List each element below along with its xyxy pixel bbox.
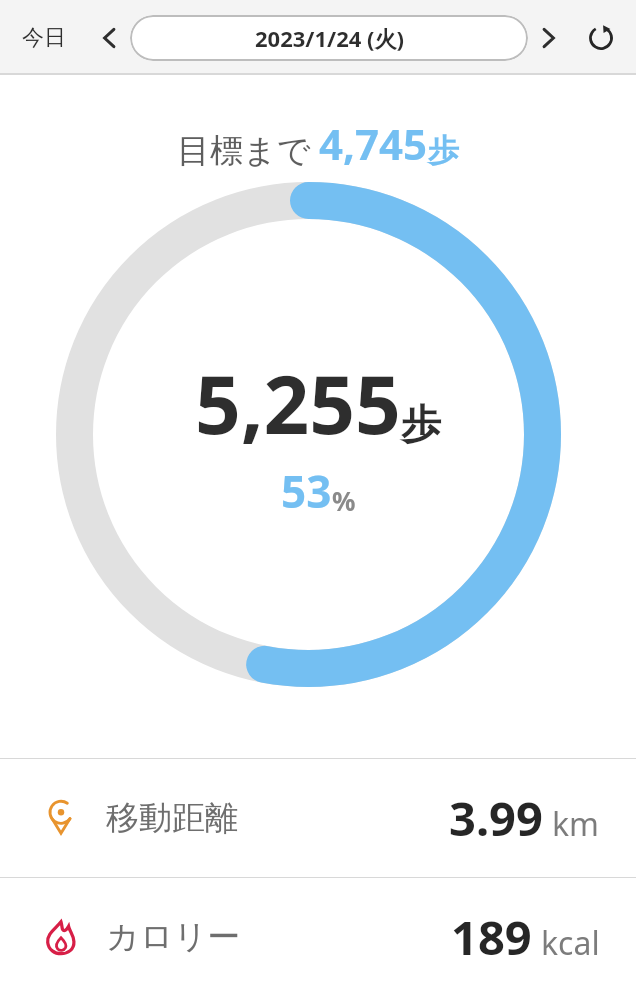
staticText: 189	[451, 905, 532, 969]
staticText: 今日	[22, 24, 66, 52]
staticText: 目標まで	[177, 130, 311, 172]
staticText: カロリー	[106, 916, 241, 958]
staticText: 53	[281, 461, 332, 521]
staticText: 歩	[401, 399, 441, 449]
button[interactable]: 2023/1/24 (火)	[130, 15, 528, 61]
staticText: %	[332, 483, 356, 518]
staticText: km	[552, 802, 600, 846]
button[interactable]: 更新	[580, 17, 622, 59]
staticText: 3.99	[449, 786, 543, 850]
button[interactable]: カロリー	[0, 878, 636, 996]
staticText: 5,255	[195, 348, 401, 457]
staticText: 4,745	[319, 115, 428, 172]
button[interactable]: 次の日	[530, 20, 566, 56]
staticText: kcal	[541, 921, 600, 965]
button[interactable]: 移動距離	[0, 759, 636, 877]
staticText: 2023/1/24 (火)	[255, 23, 404, 53]
staticText: 歩	[428, 131, 459, 170]
button[interactable]: 今日	[16, 16, 72, 60]
button[interactable]: 前の日	[92, 20, 128, 56]
staticText: 移動距離	[106, 797, 238, 839]
